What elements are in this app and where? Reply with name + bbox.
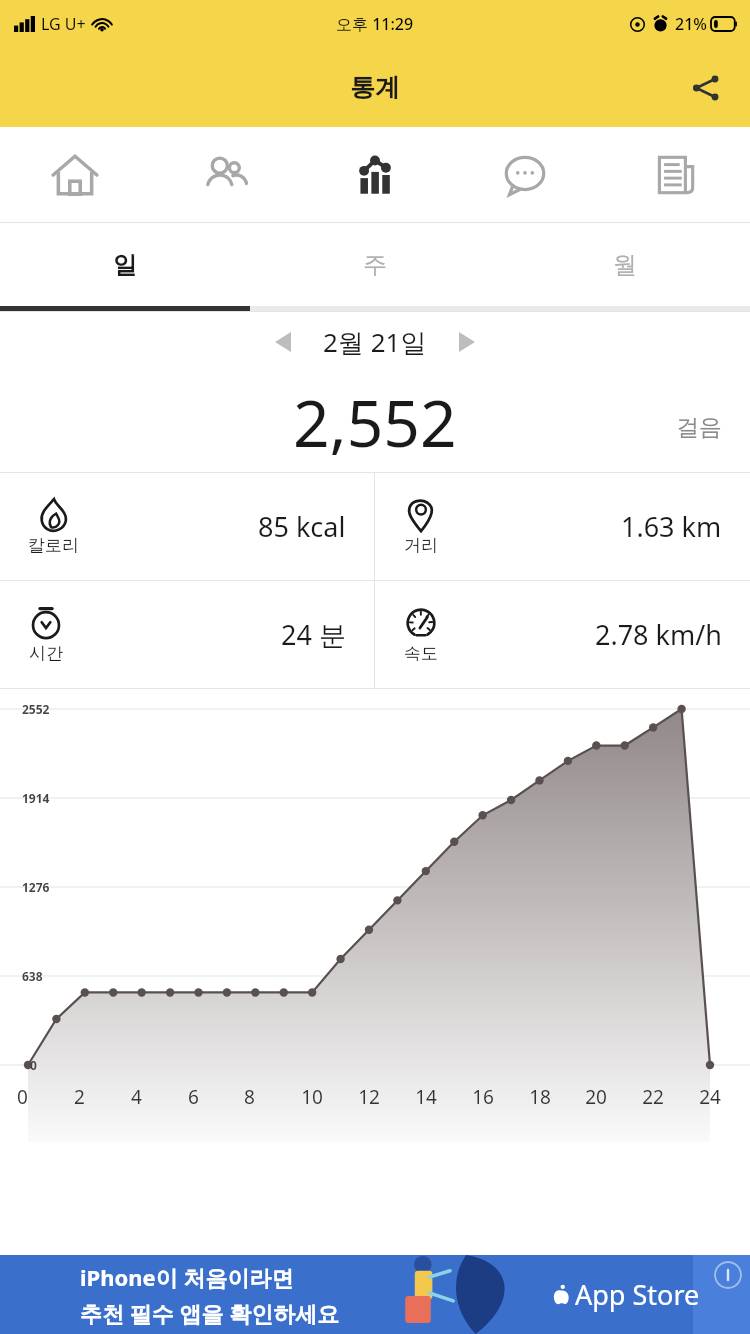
staticText: 21% (675, 13, 707, 35)
staticText: 1914 (22, 790, 50, 806)
button[interactable]: 주 (250, 223, 500, 306)
staticText: 2552 (22, 701, 50, 717)
staticText: 추천 필수 앱을 확인하세요 (80, 1298, 340, 1328)
button[interactable]: Next day (445, 320, 489, 364)
button[interactable]: Previous day (261, 320, 305, 364)
button[interactable]: 시간 (0, 581, 374, 688)
button[interactable]: 속도 (375, 581, 750, 688)
staticText: 24 분 (281, 616, 346, 653)
staticText: 시간 (29, 643, 63, 664)
staticText: 0 (17, 1084, 28, 1110)
staticText: 일 (113, 250, 137, 280)
button[interactable]: Friends (150, 127, 300, 222)
staticText: App Store (575, 1276, 700, 1313)
staticText: 거리 (404, 535, 438, 556)
staticText: iPhone이 처음이라면 (80, 1262, 294, 1292)
staticText: 638 (22, 968, 43, 984)
staticText: 1.63 km (621, 508, 722, 545)
staticText: 8 (244, 1084, 255, 1110)
button[interactable]: 일 (0, 223, 250, 306)
staticText: 걸음 (676, 413, 722, 442)
button[interactable]: 칼로리 (0, 473, 374, 580)
button[interactable]: Share (682, 64, 730, 112)
button[interactable]: 월 (500, 223, 750, 306)
staticText: 1276 (22, 879, 50, 895)
staticText: 월 (613, 250, 637, 280)
staticText: 2,552 (293, 379, 457, 466)
button[interactable]: News (600, 127, 750, 222)
staticText: 주 (363, 250, 387, 280)
button[interactable]: Messages (450, 127, 600, 222)
staticText: 14 (415, 1084, 437, 1110)
staticText: 통계 (350, 72, 400, 103)
staticText: 속도 (404, 643, 438, 664)
staticText: 0 (30, 1057, 37, 1073)
staticText: 칼로리 (28, 535, 79, 556)
staticText: 2.78 km/h (595, 616, 722, 653)
staticText: 16 (472, 1084, 494, 1110)
staticText: 18 (529, 1084, 551, 1110)
staticText: 2월 21일 (323, 324, 427, 360)
staticText: 22 (642, 1084, 664, 1110)
button[interactable]: Statistics (300, 127, 450, 222)
staticText: 12 (358, 1084, 380, 1110)
staticText: 2 (74, 1084, 85, 1110)
staticText: 20 (585, 1084, 607, 1110)
button[interactable]: Ad info (714, 1261, 742, 1289)
staticText: 4 (131, 1084, 142, 1110)
button[interactable]: Home (0, 127, 150, 222)
staticText: 6 (188, 1084, 199, 1110)
staticText: 10 (301, 1084, 323, 1110)
staticText: 24 (699, 1084, 721, 1110)
button[interactable]: 거리 (375, 473, 750, 580)
staticText: LG U+ (41, 13, 86, 35)
staticText: 85 kcal (258, 508, 346, 545)
button[interactable]: iPhone이 처음이라면 (0, 1255, 750, 1334)
staticText: 오후 11:29 (336, 13, 414, 35)
